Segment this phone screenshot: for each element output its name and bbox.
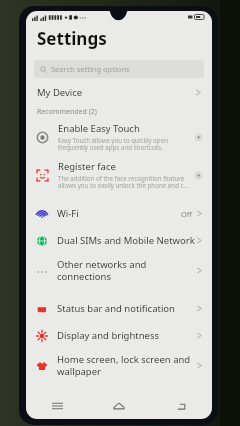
button[interactable]: Dual SIMs and Mobile Network	[26, 227, 212, 254]
button[interactable]: Home screen, lock screen and wallpaper	[26, 349, 212, 382]
button[interactable]: Recents	[26, 393, 88, 419]
staticText: Settings	[37, 27, 107, 50]
staticText: Register face	[58, 160, 116, 173]
staticText: Enable Easy Touch	[58, 122, 140, 135]
staticText: Other networks and connections	[57, 258, 197, 283]
button[interactable]: Back	[150, 393, 212, 419]
staticText: Wi-Fi	[57, 207, 181, 220]
button[interactable]: Status bar and notification	[26, 295, 212, 322]
staticText: Off	[181, 209, 193, 219]
staticText: Dual SIMs and Mobile Network	[57, 234, 197, 247]
button[interactable]: Search setting options	[34, 60, 204, 78]
staticText: Display and brightness	[57, 329, 197, 342]
button[interactable]: Home	[88, 393, 150, 419]
staticText: Recommended (2)	[37, 107, 97, 117]
button[interactable]: Wi-Fi	[26, 200, 212, 227]
button[interactable]: Display and brightness	[26, 322, 212, 349]
button[interactable]: Enable Easy Touch	[26, 121, 212, 153]
staticText: Search setting options	[51, 64, 130, 74]
staticText: My Device	[37, 86, 83, 99]
button[interactable]: Register face	[26, 159, 212, 191]
staticText: The addition of the face recognition fea…	[58, 174, 191, 190]
staticText: Easy Touch allows you to quickly open fr…	[58, 136, 168, 152]
button[interactable]: Other networks and connections	[26, 254, 212, 287]
staticText: Home screen, lock screen and wallpaper	[57, 353, 197, 378]
button[interactable]: My Device	[26, 80, 212, 104]
staticText: Status bar and notification	[57, 302, 197, 315]
